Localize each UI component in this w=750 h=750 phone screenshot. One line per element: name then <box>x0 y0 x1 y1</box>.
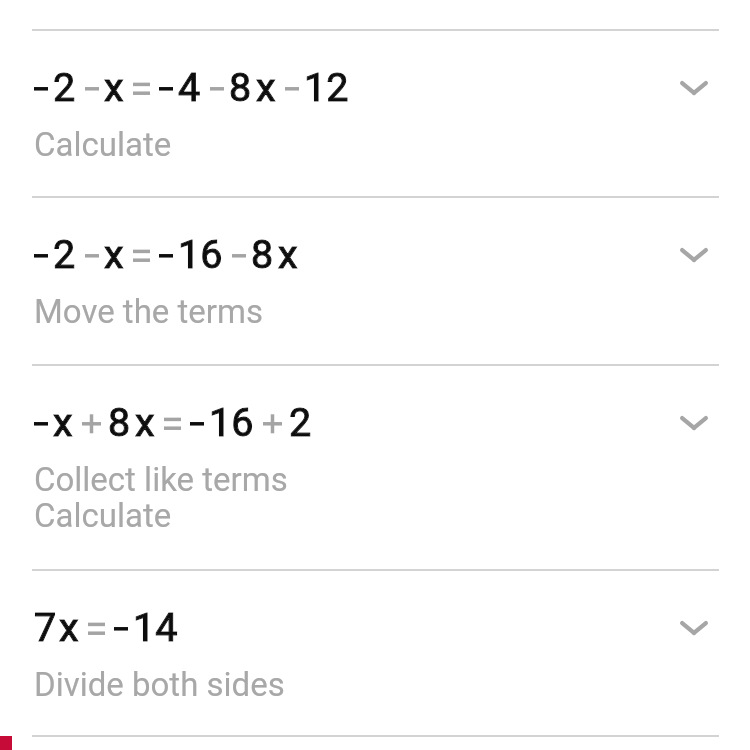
staticText: x <box>59 604 79 650</box>
button[interactable]: Expand step <box>664 58 724 118</box>
staticText: x <box>104 64 124 110</box>
staticText: 14 <box>133 604 178 650</box>
staticText: x <box>104 231 124 277</box>
staticText: 12 <box>304 64 349 110</box>
staticText: 16 <box>178 231 223 277</box>
button[interactable]: Expand step <box>664 225 724 285</box>
staticText: x <box>256 64 276 110</box>
staticText: 2 <box>53 64 76 110</box>
staticText: x <box>135 399 155 445</box>
staticText: x <box>59 604 79 650</box>
button[interactable]: x <box>0 364 750 569</box>
staticText: 2 <box>53 64 76 110</box>
staticText: 16 <box>209 399 254 445</box>
staticText: 2 <box>53 231 76 277</box>
staticText: 2 <box>289 399 312 445</box>
staticText: x <box>104 231 124 277</box>
staticText: 8 <box>251 231 274 277</box>
staticText: Calculate <box>34 125 172 164</box>
staticText: x <box>278 231 298 277</box>
button[interactable]: 2 <box>0 196 750 364</box>
staticText: 8 <box>229 64 252 110</box>
staticText: x <box>256 64 276 110</box>
staticText: Collect like terms Calculate <box>34 460 288 535</box>
staticText: x <box>53 399 73 445</box>
button[interactable]: 7 <box>0 569 750 735</box>
staticText: 2 <box>289 399 312 445</box>
button[interactable]: Expand step <box>664 598 724 658</box>
staticText: 16 <box>178 231 223 277</box>
staticText: 8 <box>229 64 252 110</box>
staticText: x <box>278 231 298 277</box>
staticText: x <box>53 399 73 445</box>
staticText: 4 <box>178 64 201 110</box>
staticText: x <box>135 399 155 445</box>
button[interactable]: Expand step <box>664 393 724 453</box>
staticText: x <box>104 64 124 110</box>
staticText: 8 <box>108 399 131 445</box>
staticText: Move the terms <box>34 292 263 331</box>
staticText: 12 <box>304 64 349 110</box>
button[interactable]: 2 <box>0 29 750 196</box>
staticText: 7 <box>34 604 57 650</box>
staticText: Divide both sides <box>34 665 285 704</box>
staticText: 2 <box>53 231 76 277</box>
staticText: 8 <box>251 231 274 277</box>
staticText: 8 <box>108 399 131 445</box>
staticText: 7 <box>34 604 57 650</box>
staticText: 4 <box>178 64 201 110</box>
staticText: 14 <box>133 604 178 650</box>
staticText: 16 <box>209 399 254 445</box>
